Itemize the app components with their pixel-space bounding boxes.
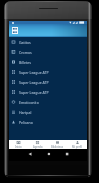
button[interactable]: Super League ATP [9, 77, 87, 87]
staticText: Super League ATP [19, 90, 49, 95]
button[interactable]: Biblioteca [47, 140, 67, 149]
button[interactable]: Emoticonito [9, 97, 87, 107]
button[interactable]: Super League ATP [9, 87, 87, 97]
button[interactable]: Super League ATP [9, 67, 87, 77]
staticText: Pelicano [19, 120, 33, 125]
staticText: Hartpal [19, 110, 32, 115]
staticText: Gatitos [19, 40, 31, 45]
button[interactable]: Hartpal [9, 107, 87, 117]
button[interactable]: Gatitos [9, 37, 87, 47]
button[interactable]: Agenda [28, 140, 47, 149]
button[interactable]: App logo [12, 27, 18, 34]
staticText: Billetes [19, 60, 31, 65]
staticText: Biblioteca [51, 145, 63, 149]
staticText: Mi perfil [72, 145, 83, 149]
button[interactable]: Billetes [9, 57, 87, 67]
button[interactable]: Cromos [9, 47, 87, 57]
staticText: Cromos [19, 50, 32, 55]
staticText: Super League ATP [19, 80, 49, 85]
button[interactable]: Mi perfil [67, 140, 87, 149]
button[interactable]: Inicio [9, 140, 28, 149]
staticText: Super League ATP [19, 70, 49, 75]
staticText: Agenda [33, 145, 43, 149]
staticText: Inicio [15, 145, 22, 149]
button[interactable]: Pelicano [9, 117, 87, 127]
staticText: Emoticonito [19, 100, 39, 105]
